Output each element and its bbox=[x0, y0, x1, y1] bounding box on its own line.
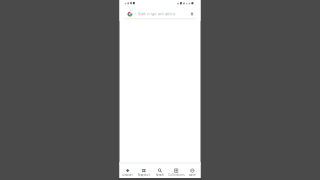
button[interactable]: Collections bbox=[168, 168, 184, 177]
staticText: Collections bbox=[168, 173, 184, 177]
staticText: Search bbox=[156, 173, 164, 177]
button[interactable]: Voice search bbox=[188, 10, 196, 19]
button[interactable]: Snapshot bbox=[136, 168, 152, 177]
button[interactable]: Search or type web address bbox=[122, 10, 198, 19]
staticText: Discover bbox=[122, 173, 133, 177]
staticText: Search or type web address bbox=[138, 12, 175, 16]
button[interactable]: More bbox=[184, 168, 200, 177]
staticText: Snapshot bbox=[138, 173, 150, 177]
button[interactable]: Discover bbox=[119, 168, 136, 177]
button[interactable]: Search bbox=[152, 168, 168, 177]
staticText: More bbox=[189, 173, 196, 177]
